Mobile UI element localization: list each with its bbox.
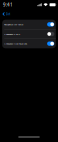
staticText: Announce Notifications — [4, 42, 27, 45]
staticText: 9:41 — [3, 2, 13, 8]
button[interactable]: Siri — [0, 10, 12, 18]
button[interactable]: Announce Notifications — [2, 39, 56, 48]
staticText: Announce Calls — [4, 32, 20, 36]
staticText: Siri — [5, 12, 10, 16]
button[interactable]: Announce Calls — [2, 29, 56, 39]
staticText: Recognize My Voice — [4, 23, 23, 26]
button[interactable]: Recognize My Voice — [2, 20, 56, 29]
